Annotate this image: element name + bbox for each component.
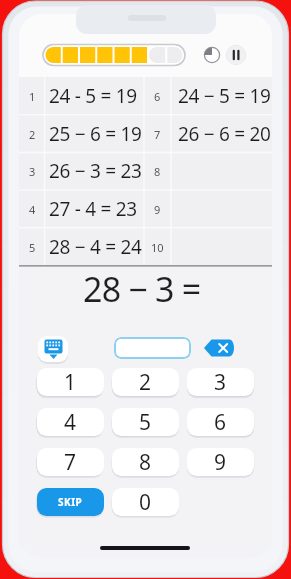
staticText: 2 xyxy=(29,127,36,142)
staticText: 1 xyxy=(64,368,77,396)
staticText: 24 - 5 = 19 xyxy=(49,83,137,109)
button[interactable]: 0 xyxy=(112,488,179,516)
staticText: 9 xyxy=(154,202,161,217)
button[interactable]: 5 xyxy=(112,408,179,436)
button[interactable]: 2 xyxy=(112,368,179,396)
button[interactable]: 4 xyxy=(37,408,104,436)
button[interactable] xyxy=(38,336,68,362)
button[interactable]: 7 xyxy=(37,448,104,476)
staticText: 25 − 6 = 19 xyxy=(49,121,142,147)
staticText: 8 xyxy=(139,448,152,476)
staticText: SKIP xyxy=(58,495,83,509)
button[interactable] xyxy=(226,45,246,65)
button[interactable] xyxy=(114,337,191,359)
staticText: 9 xyxy=(214,448,227,476)
button[interactable]: 8 xyxy=(112,448,179,476)
button[interactable]: SKIP xyxy=(37,488,104,516)
staticText: 2 xyxy=(139,368,152,396)
staticText: 27 - 4 = 23 xyxy=(49,196,137,222)
staticText: 26 − 6 = 20 xyxy=(178,121,271,147)
staticText: 3 xyxy=(29,164,36,179)
staticText: 28 − 4 = 24 xyxy=(49,234,142,260)
staticText: 7 xyxy=(154,127,161,142)
staticText: 4 xyxy=(64,408,77,436)
staticText: 8 xyxy=(154,164,161,179)
staticText: 6 xyxy=(154,89,161,104)
staticText: 7 xyxy=(64,448,77,476)
staticText: 1 xyxy=(29,89,36,104)
staticText: 6 xyxy=(214,408,227,436)
staticText: 5 xyxy=(139,408,152,436)
staticText: 0 xyxy=(139,488,152,516)
staticText: 5 xyxy=(29,240,36,255)
staticText: 4 xyxy=(29,202,36,217)
button[interactable]: 1 xyxy=(37,368,104,396)
button[interactable]: 9 xyxy=(187,448,254,476)
staticText: 10 xyxy=(151,240,164,255)
button[interactable] xyxy=(202,338,236,358)
staticText: 24 − 5 = 19 xyxy=(178,83,271,109)
button[interactable]: 6 xyxy=(187,408,254,436)
staticText: 28 − 3 = xyxy=(83,266,201,308)
staticText: 3 xyxy=(214,368,227,396)
staticText: 26 − 3 = 23 xyxy=(49,158,142,184)
button[interactable]: 3 xyxy=(187,368,254,396)
